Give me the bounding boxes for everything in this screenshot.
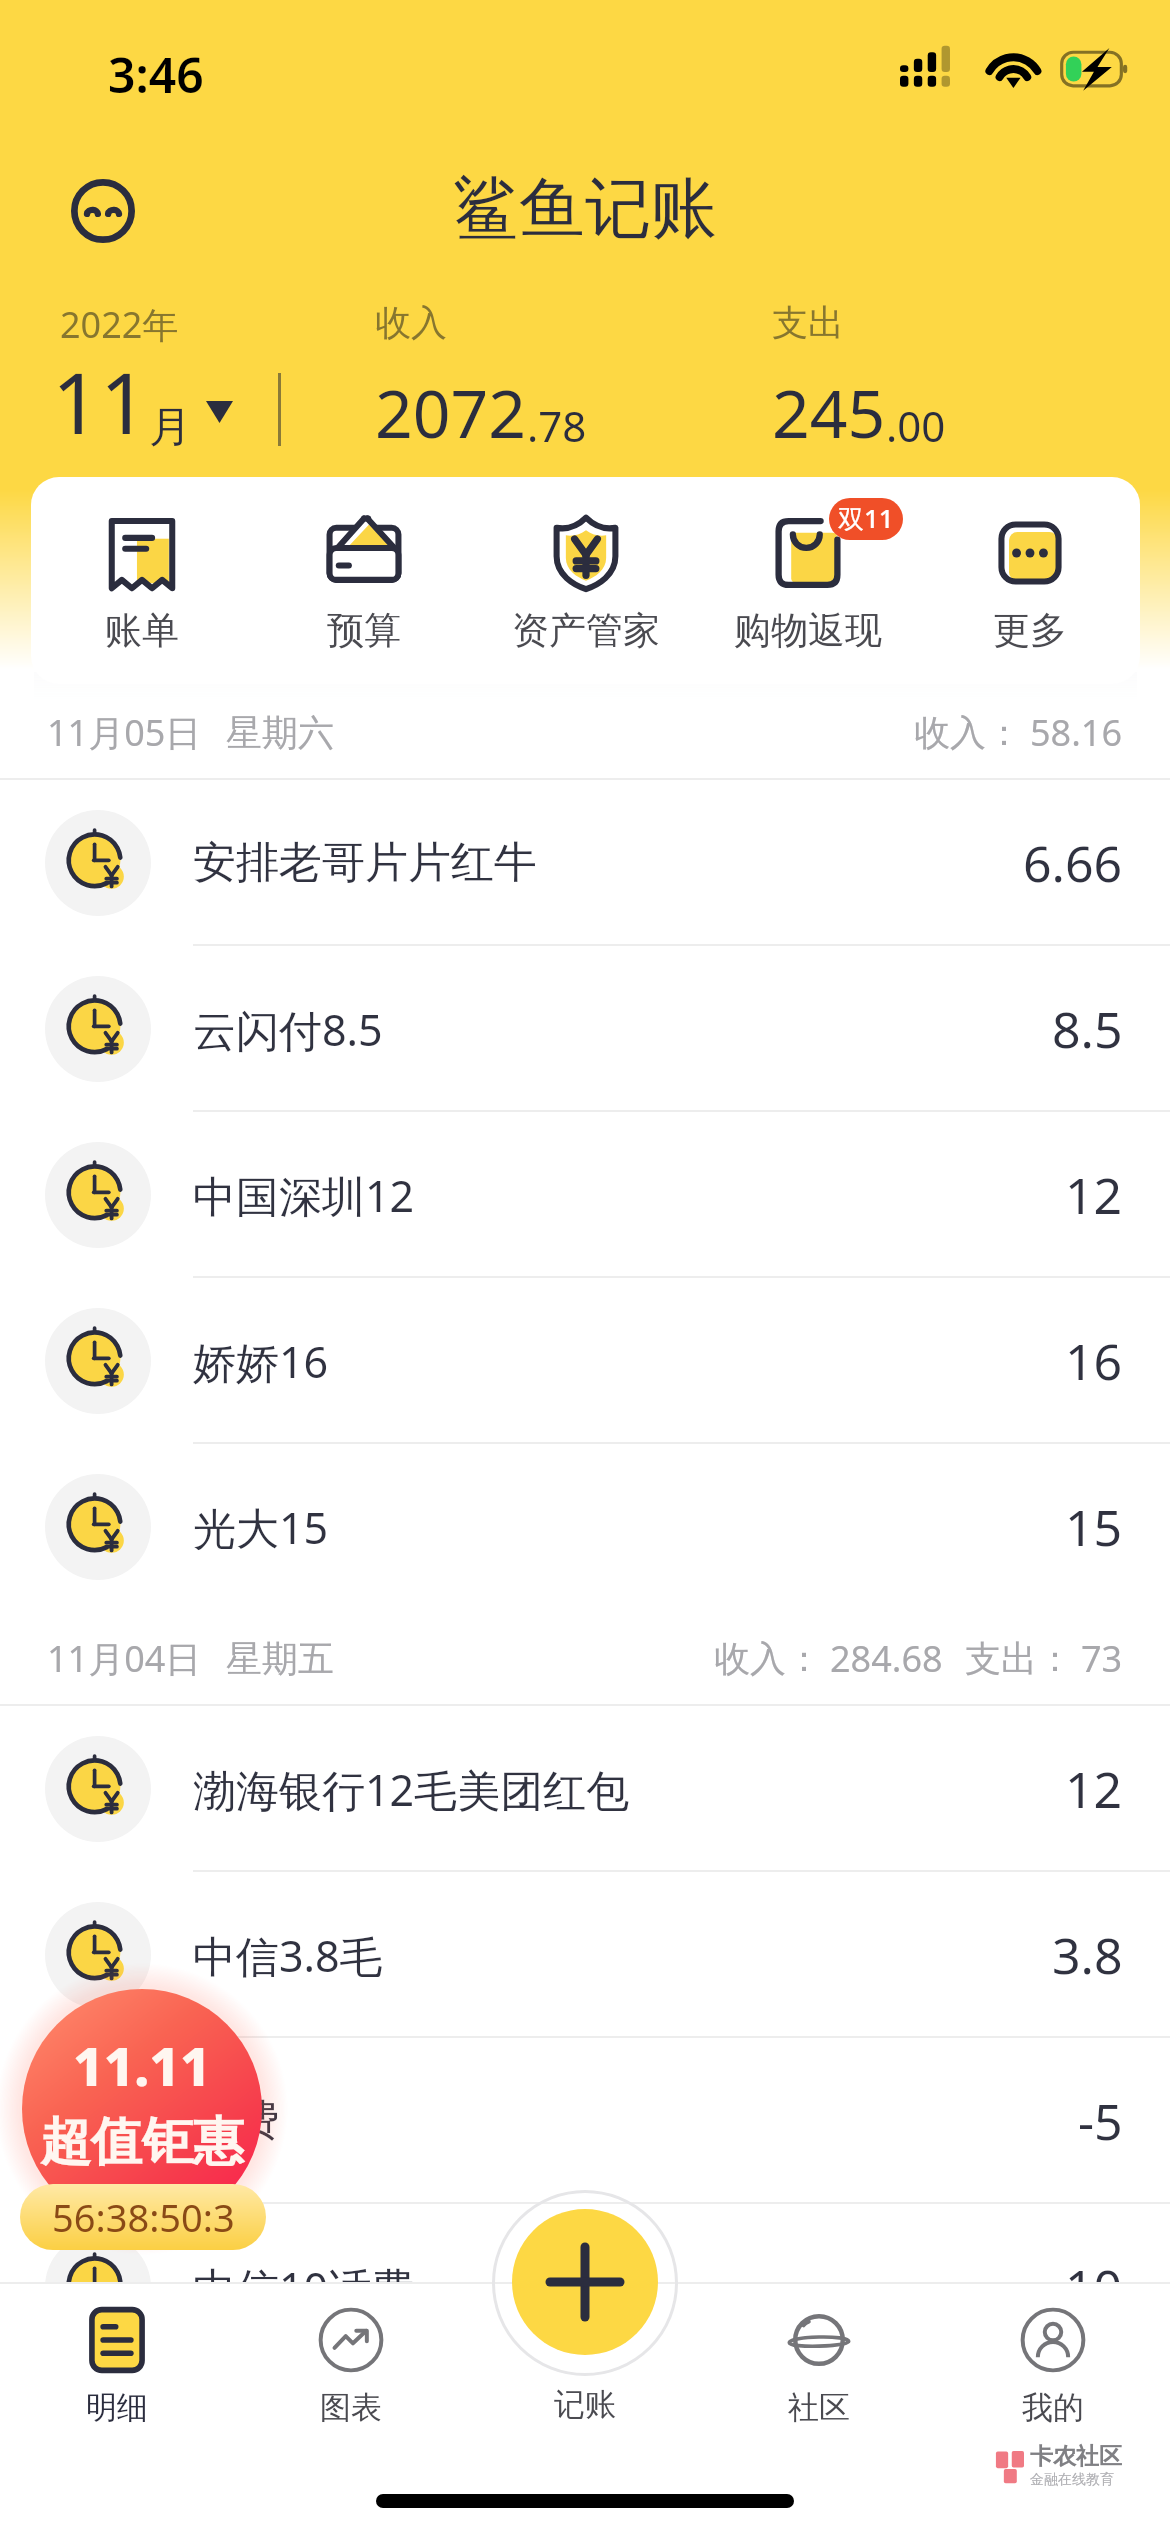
staticText: .78 bbox=[527, 397, 587, 454]
button[interactable]: 11.11 bbox=[18, 1965, 268, 2255]
staticText: 中信3.8毛 bbox=[193, 1926, 383, 1985]
staticText: 58.16 bbox=[1030, 708, 1123, 757]
staticText: 10 bbox=[1065, 2253, 1123, 2321]
staticText: 资产管家 bbox=[512, 607, 660, 654]
staticText: 购物返现 bbox=[734, 607, 882, 654]
staticText: 12 bbox=[1065, 1755, 1123, 1823]
staticText: 收入： bbox=[914, 710, 1022, 755]
staticText: 安排老哥片片红牛 bbox=[193, 836, 537, 890]
staticText: 收入： bbox=[714, 1636, 822, 1681]
staticText: 更多 bbox=[993, 607, 1067, 654]
button[interactable]: 云闪付8.5 bbox=[0, 946, 1170, 1112]
button[interactable]: 渤海银行12毛美团红包 bbox=[0, 1706, 1170, 1872]
staticText: 284.68 bbox=[830, 1634, 943, 1683]
button[interactable]: 光大15 bbox=[0, 1444, 1170, 1610]
button[interactable]: 中国深圳12 bbox=[0, 1112, 1170, 1278]
staticText: 支出 bbox=[772, 300, 844, 345]
staticText: 社区 bbox=[788, 2388, 850, 2427]
staticText: 云闪付8.5 bbox=[193, 1000, 383, 1059]
button[interactable]: 图表 bbox=[234, 2282, 468, 2427]
staticText: 星期五 bbox=[226, 1636, 334, 1681]
button[interactable]: 中信10话费 bbox=[0, 2204, 1170, 2370]
staticText: 渤海银行12毛美团红包 bbox=[193, 1760, 630, 1819]
staticText: 光大15 bbox=[193, 1498, 329, 1557]
button[interactable]: 个人中心 bbox=[71, 179, 135, 243]
staticText: 15 bbox=[1065, 1493, 1123, 1561]
button[interactable]: 资产管家 bbox=[475, 507, 697, 654]
staticText: 图表 bbox=[320, 2388, 382, 2427]
button[interactable]: 社区 bbox=[702, 2282, 936, 2427]
staticText: 我的 bbox=[1022, 2388, 1084, 2427]
button[interactable]: 预算 bbox=[253, 507, 475, 654]
staticText: 16 bbox=[1065, 1327, 1123, 1395]
staticText: 中信10话费 bbox=[193, 2258, 415, 2317]
staticText: 245 bbox=[772, 367, 886, 457]
staticText: 月 bbox=[149, 401, 191, 454]
staticText: 双11 bbox=[838, 500, 894, 536]
staticText: 记账 bbox=[554, 2385, 616, 2424]
staticText: 8.5 bbox=[1052, 995, 1123, 1063]
staticText: -5 bbox=[1078, 2087, 1123, 2155]
staticText: 收入 bbox=[375, 300, 447, 345]
staticText: 3.8 bbox=[1052, 1921, 1123, 1989]
button[interactable]: 更多 bbox=[919, 507, 1140, 654]
staticText: 2022年 bbox=[60, 300, 179, 349]
staticText: 明细 bbox=[86, 2388, 148, 2427]
button[interactable]: 账单 bbox=[31, 507, 253, 654]
staticText: 预算 bbox=[327, 607, 401, 654]
staticText: 73 bbox=[1081, 1634, 1123, 1683]
staticText: .00 bbox=[886, 397, 946, 454]
button[interactable]: 记账 bbox=[512, 2209, 658, 2355]
staticText: 11月05日 bbox=[47, 708, 202, 757]
button[interactable]: 11 bbox=[52, 344, 218, 458]
staticText: 56:38:50:3 bbox=[52, 2191, 235, 2243]
staticText: 话费 bbox=[193, 2094, 279, 2148]
staticText: 2072 bbox=[375, 367, 527, 457]
staticText: 3:46 bbox=[108, 42, 204, 107]
staticText: 金融在线教育 bbox=[1030, 2471, 1114, 2489]
staticText: 超值钜惠 bbox=[40, 2110, 244, 2174]
staticText: 账单 bbox=[105, 607, 179, 654]
button[interactable]: 明细 bbox=[0, 2282, 234, 2427]
staticText: 11 bbox=[52, 344, 149, 458]
button[interactable]: 安排老哥片片红牛 bbox=[0, 780, 1170, 946]
staticText: 支出： bbox=[965, 1636, 1073, 1681]
staticText: 12 bbox=[1065, 1161, 1123, 1229]
button[interactable]: 我的 bbox=[936, 2282, 1170, 2427]
staticText: 11.11 bbox=[73, 2029, 211, 2101]
staticText: 11月04日 bbox=[47, 1634, 202, 1683]
staticText: 娇娇16 bbox=[193, 1332, 329, 1391]
staticText: 中国深圳12 bbox=[193, 1166, 415, 1225]
button[interactable]: 话费 bbox=[0, 2038, 1170, 2204]
button[interactable]: 娇娇16 bbox=[0, 1278, 1170, 1444]
staticText: 6.66 bbox=[1023, 829, 1123, 897]
staticText: 鲨鱼记账 bbox=[0, 167, 1170, 250]
button[interactable]: 中信3.8毛 bbox=[0, 1872, 1170, 2038]
button[interactable]: 双11 bbox=[697, 507, 919, 654]
staticText: 卡农社区 bbox=[1030, 2442, 1122, 2471]
staticText: 星期六 bbox=[226, 710, 334, 755]
